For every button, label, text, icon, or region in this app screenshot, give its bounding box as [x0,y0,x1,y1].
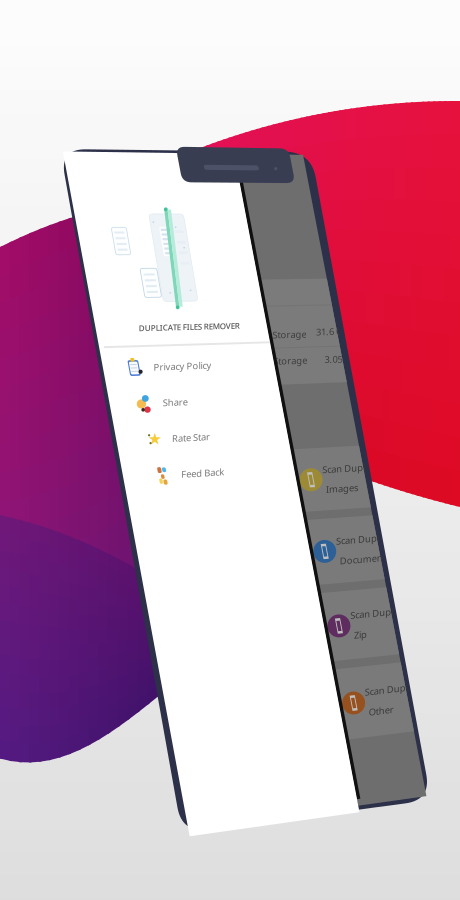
staticText: 3.05 GB [325,353,358,366]
staticText: Zip [354,629,367,641]
button[interactable]: Share [0,0,460,900]
staticText: Scan Duplicate [336,535,398,547]
staticText: Feed Back [181,468,224,480]
button[interactable]: Scan Duplicate [0,0,460,900]
staticText: Other [369,706,394,718]
staticText: Rate Star [172,432,210,445]
staticText: DUPLICATE FILES REMOVER [139,323,240,333]
button[interactable]: Scan Duplicate [0,0,460,900]
staticText: Images [326,483,358,496]
staticText: Documents [340,555,390,567]
button[interactable]: Rate Star [0,0,460,900]
staticText: 31.6 GB [316,326,349,338]
staticText: Privacy Policy [153,361,211,373]
button[interactable]: Scan Duplicate [0,0,460,900]
button[interactable]: Privacy Policy [0,0,460,900]
staticText: Scan Duplicate [365,686,427,698]
button[interactable]: Feed Back [0,0,460,900]
staticText: Scan Duplicate [350,609,412,622]
staticText: Share [163,396,188,409]
button[interactable]: Scan Duplicate [0,0,460,900]
staticText: Used Storage [249,356,307,368]
staticText: Available Storage [232,330,306,342]
staticText: Scan Duplicate [322,463,384,476]
